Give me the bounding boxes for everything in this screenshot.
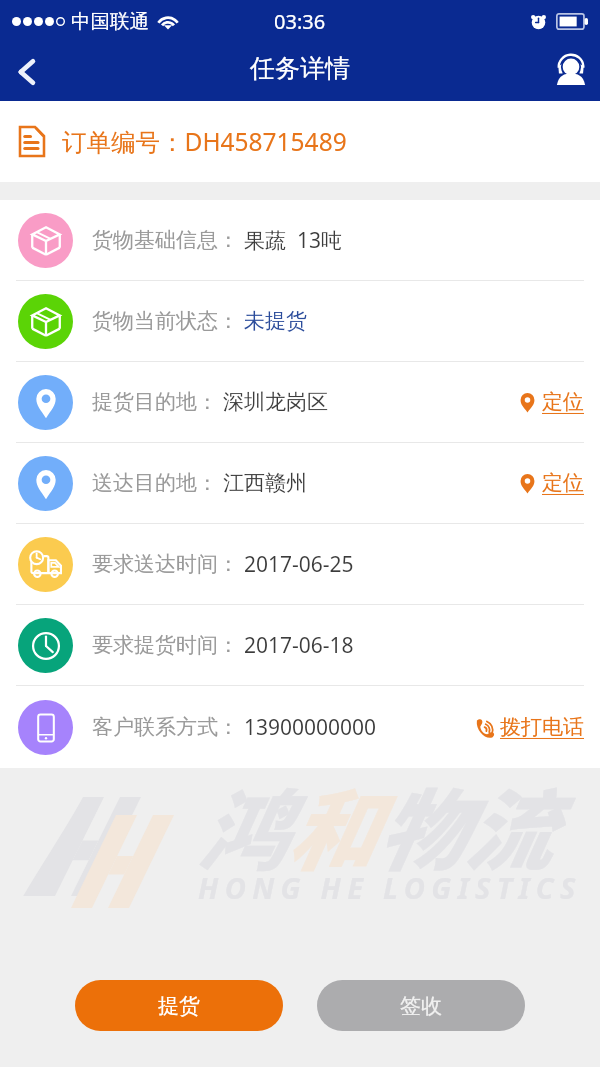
button[interactable]: 拨打电话 (475, 714, 584, 740)
button[interactable]: Back (0, 46, 52, 98)
button[interactable]: 客户联系方式： (0, 686, 600, 768)
staticText: 签收 (400, 993, 442, 1019)
staticText: 果蔬 13吨 (244, 226, 342, 255)
staticText: 物流 (375, 761, 552, 888)
button[interactable]: 要求送达时间： (0, 524, 600, 604)
staticText: 定位 (542, 470, 584, 496)
button[interactable]: 提货目的地： (0, 362, 600, 442)
staticText: 深圳龙岗区 (223, 389, 328, 415)
staticText: 客户联系方式： (92, 714, 239, 740)
staticText: 2017-06-18 (244, 631, 354, 660)
button[interactable]: Customer service (542, 43, 600, 101)
button[interactable]: 要求提货时间： (0, 605, 600, 685)
button[interactable]: 订单编号：DH458715489 (0, 101, 600, 182)
staticText: 任务详情 (250, 53, 350, 84)
staticText: 拨打电话 (500, 714, 584, 740)
staticText: 03:36 (274, 8, 326, 35)
staticText: 和 (286, 761, 375, 888)
staticText: 货物基础信息： (92, 227, 239, 253)
button[interactable]: 定位 (517, 470, 584, 496)
staticText: HONG HE LOGISTICS (198, 868, 582, 907)
staticText: 送达目的地： (92, 470, 218, 496)
button[interactable]: 提货 (75, 980, 283, 1031)
button[interactable]: 货物基础信息： (0, 200, 600, 280)
staticText: 货物当前状态： (92, 308, 239, 334)
staticText: 提货目的地： (92, 389, 218, 415)
staticText: 未提货 (244, 308, 307, 334)
button[interactable]: 送达目的地： (0, 443, 600, 523)
staticText: 提货 (158, 993, 200, 1019)
staticText: 订单编号：DH458715489 (62, 125, 347, 158)
staticText: 要求送达时间： (92, 551, 239, 577)
staticText: 江西赣州 (223, 470, 307, 496)
staticText: 鸿 (197, 761, 286, 888)
staticText: 2017-06-25 (244, 550, 354, 579)
staticText: 13900000000 (244, 713, 377, 742)
staticText: 要求提货时间： (92, 632, 239, 658)
button[interactable]: 定位 (517, 389, 584, 415)
staticText: 中国联通 (71, 9, 149, 34)
button[interactable]: 货物当前状态： (0, 281, 600, 361)
button[interactable]: 签收 (317, 980, 525, 1031)
staticText: 定位 (542, 389, 584, 415)
